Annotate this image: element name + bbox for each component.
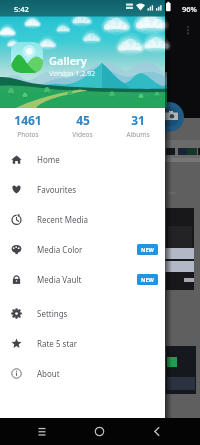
- button[interactable]: Recent Media: [0, 204, 165, 234]
- button[interactable]: 45: [55, 112, 110, 139]
- staticText: Albums: [126, 130, 150, 139]
- staticText: Videos: [72, 130, 93, 139]
- button[interactable]: Settings: [0, 298, 165, 328]
- staticText: 5:42: [14, 4, 29, 14]
- staticText: Media Vault: [37, 274, 82, 285]
- button[interactable]: Home: [0, 144, 165, 174]
- button[interactable]: Favourites: [0, 174, 165, 204]
- staticText: Recent Media: [37, 214, 88, 225]
- staticText: Gallery: [49, 53, 87, 68]
- staticText: About: [37, 368, 60, 379]
- staticText: 31: [131, 112, 145, 128]
- button[interactable]: Home: [66, 418, 133, 445]
- staticText: 1461: [14, 112, 42, 128]
- button[interactable]: About: [0, 358, 165, 388]
- button[interactable]: 1461: [0, 112, 55, 139]
- staticText: NEW: [141, 246, 154, 253]
- button[interactable]: 31: [110, 112, 165, 139]
- staticText: Photos: [17, 130, 39, 139]
- staticText: NEW: [141, 276, 154, 283]
- button[interactable]: Rate 5 star: [0, 328, 165, 358]
- staticText: Version 1.2.92: [49, 69, 96, 79]
- staticText: Settings: [37, 308, 68, 319]
- button[interactable]: Back: [133, 418, 200, 445]
- button[interactable]: Media Vault: [0, 264, 165, 294]
- button[interactable]: Recents: [0, 418, 66, 445]
- staticText: Home: [37, 154, 60, 165]
- staticText: Rate 5 star: [37, 338, 78, 349]
- staticText: Media Color: [37, 244, 83, 255]
- staticText: 96%: [182, 4, 197, 14]
- staticText: Favourites: [37, 184, 77, 195]
- staticText: 45: [76, 112, 90, 128]
- button[interactable]: Media Color: [0, 234, 165, 264]
